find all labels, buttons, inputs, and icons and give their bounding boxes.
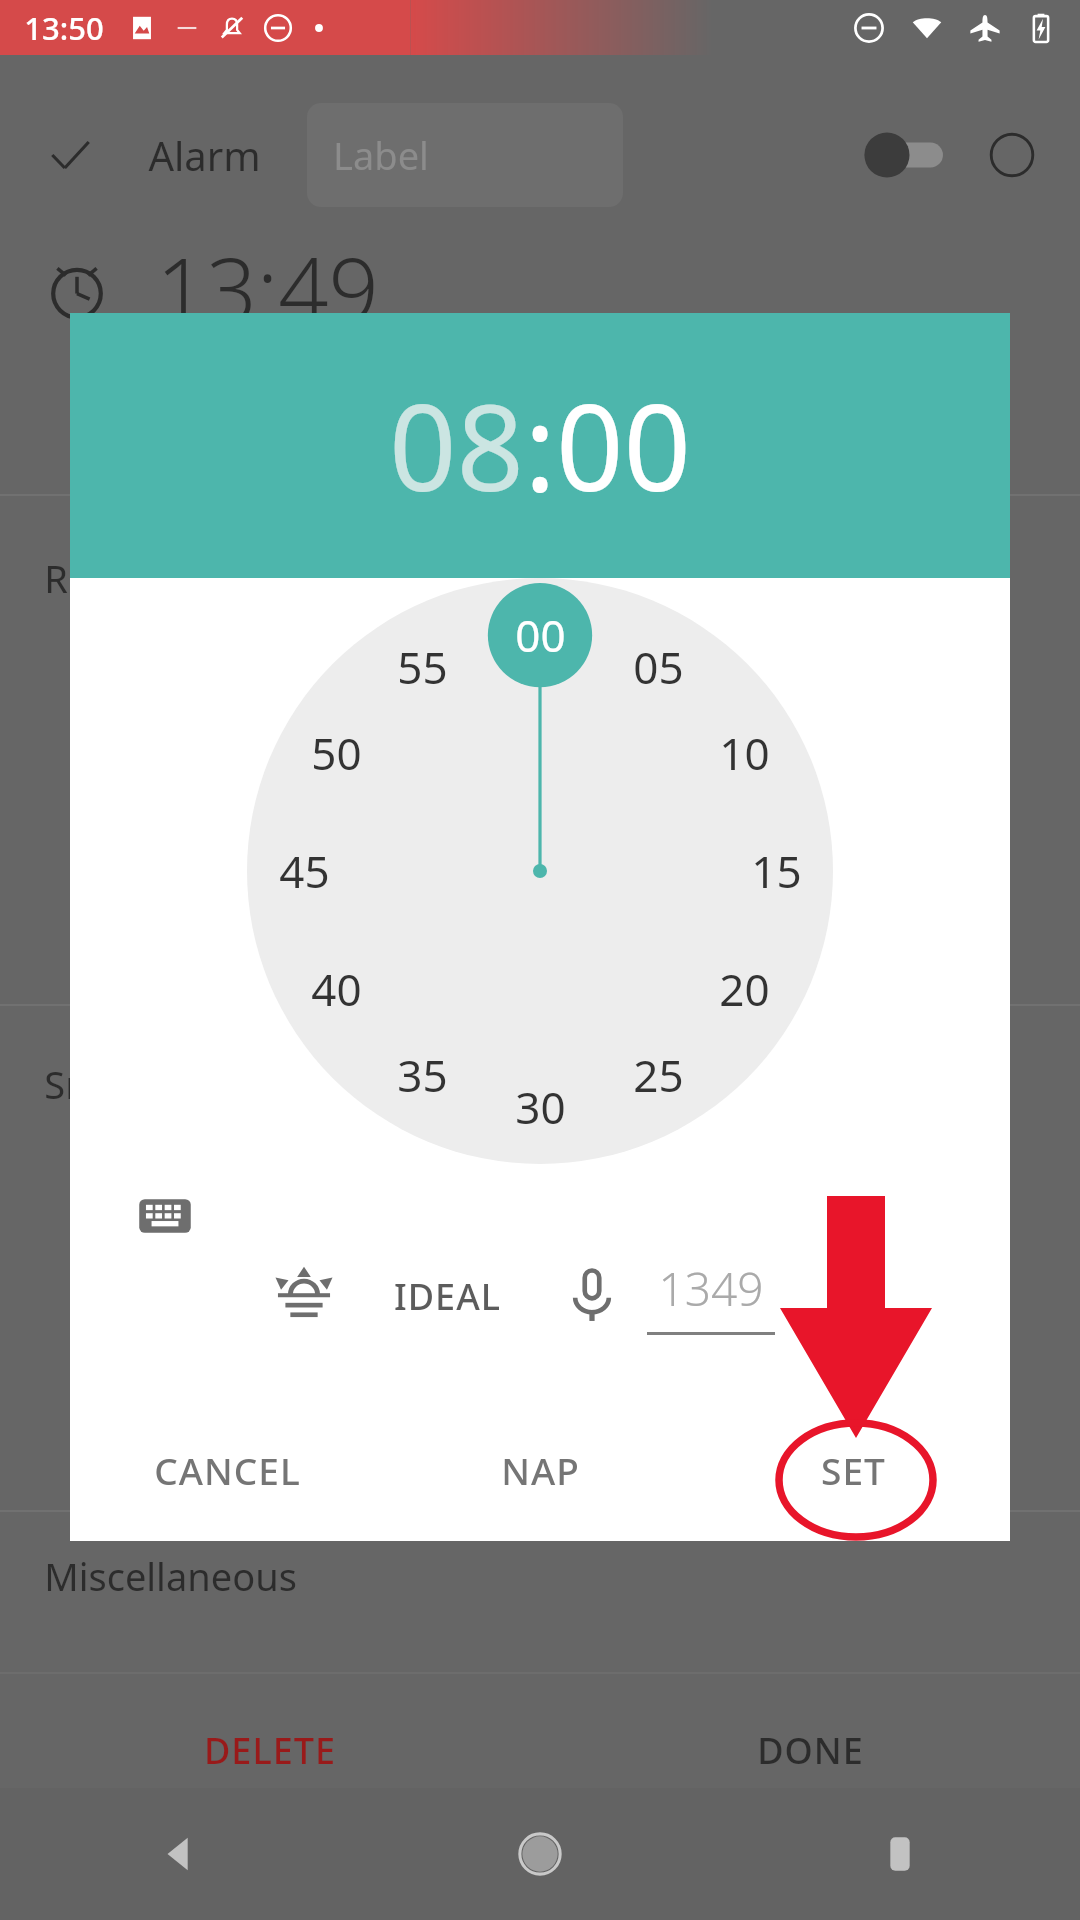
staticText: 00 [515, 605, 566, 665]
button[interactable]: 20 [696, 955, 792, 1023]
button[interactable]: 05 [610, 633, 706, 701]
staticText: DELETE [204, 1726, 336, 1775]
button[interactable]: 00 [556, 365, 691, 526]
button[interactable]: 40 [288, 955, 384, 1023]
staticText: 25 [633, 1045, 684, 1105]
staticText: Sn [44, 1058, 89, 1110]
staticText: 35 [397, 1045, 448, 1105]
staticText: 45 [279, 841, 330, 901]
button[interactable]: 30 [492, 1073, 588, 1141]
staticText: 15 [751, 841, 802, 901]
staticText: SET [821, 1445, 886, 1495]
staticText: 00 [556, 365, 691, 526]
button[interactable]: Keyboard input [128, 1179, 202, 1253]
staticText: 13:49 [156, 228, 379, 348]
staticText: Ri [44, 552, 78, 604]
button[interactable]: Sunrise [260, 1252, 348, 1340]
staticText: IDEAL [394, 1272, 501, 1321]
staticText: 1349 [658, 1257, 764, 1320]
button[interactable]: Help [984, 127, 1040, 183]
staticText: 40 [311, 959, 362, 1019]
button[interactable]: 35 [374, 1041, 470, 1109]
button[interactable]: IDEAL [394, 1272, 501, 1321]
staticText: 20 [719, 959, 770, 1019]
staticText: Miscellaneous [44, 1550, 297, 1602]
staticText: : [524, 365, 556, 526]
staticText: 08 [389, 365, 524, 526]
button[interactable]: NAP [384, 1399, 697, 1541]
staticText: DONE [757, 1726, 864, 1775]
button[interactable]: 1349 [647, 1257, 775, 1335]
staticText: NAP [501, 1445, 580, 1495]
button[interactable]: 15 [728, 837, 824, 905]
button[interactable]: Toggle alarm [862, 131, 954, 179]
button[interactable]: CANCEL [70, 1399, 384, 1541]
button[interactable]: Label [307, 103, 623, 207]
staticText: CANCEL [154, 1445, 301, 1495]
button[interactable]: DONE [540, 1690, 1080, 1810]
staticText: 55 [397, 637, 448, 697]
staticText: 50 [311, 723, 362, 783]
staticText: 05 [633, 637, 684, 697]
staticText: 13:50 [24, 7, 104, 49]
button[interactable]: 00 [492, 601, 588, 669]
button[interactable]: DELETE [0, 1690, 540, 1810]
button[interactable]: 25 [610, 1041, 706, 1109]
button[interactable]: 55 [374, 633, 470, 701]
button[interactable]: Recents [720, 1788, 1080, 1920]
button[interactable]: Voice input [553, 1257, 631, 1335]
staticText: Alarm [148, 128, 261, 182]
button[interactable]: 10 [696, 719, 792, 787]
button[interactable]: Confirm [40, 125, 100, 185]
staticText: Label [333, 129, 429, 181]
staticText: 30 [515, 1077, 566, 1137]
button[interactable]: Back [0, 1788, 360, 1920]
button[interactable]: 50 [288, 719, 384, 787]
button[interactable]: Home [360, 1788, 720, 1920]
button[interactable]: 08 [389, 365, 524, 526]
button[interactable]: 45 [256, 837, 352, 905]
button[interactable]: SET [697, 1399, 1010, 1541]
staticText: 10 [719, 723, 770, 783]
